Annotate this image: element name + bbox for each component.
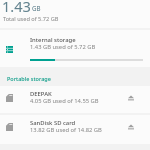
button[interactable]: DEEPAK	[0, 86, 150, 113]
staticText: Total used of 5.72 GB	[3, 15, 59, 23]
staticText: 4.05 GB used of 14.55 GB	[30, 97, 99, 105]
button[interactable]: Eject	[122, 118, 140, 136]
button[interactable]: Eject	[122, 89, 140, 107]
staticText: DEEPAK	[30, 90, 52, 98]
staticText: SanDisk SD card	[30, 119, 76, 127]
staticText: GB	[32, 4, 41, 12]
staticText: Internal storage	[30, 36, 76, 44]
button[interactable]: SanDisk SD card	[0, 115, 150, 142]
staticText: 13.82 GB used of 14.82 GB	[30, 126, 102, 134]
button[interactable]: Internal storage	[0, 32, 150, 67]
staticText: Portable storage	[7, 75, 51, 82]
staticText: 1.43	[2, 0, 31, 16]
staticText: 1.43 GB used of 5.72 GB	[30, 43, 96, 51]
